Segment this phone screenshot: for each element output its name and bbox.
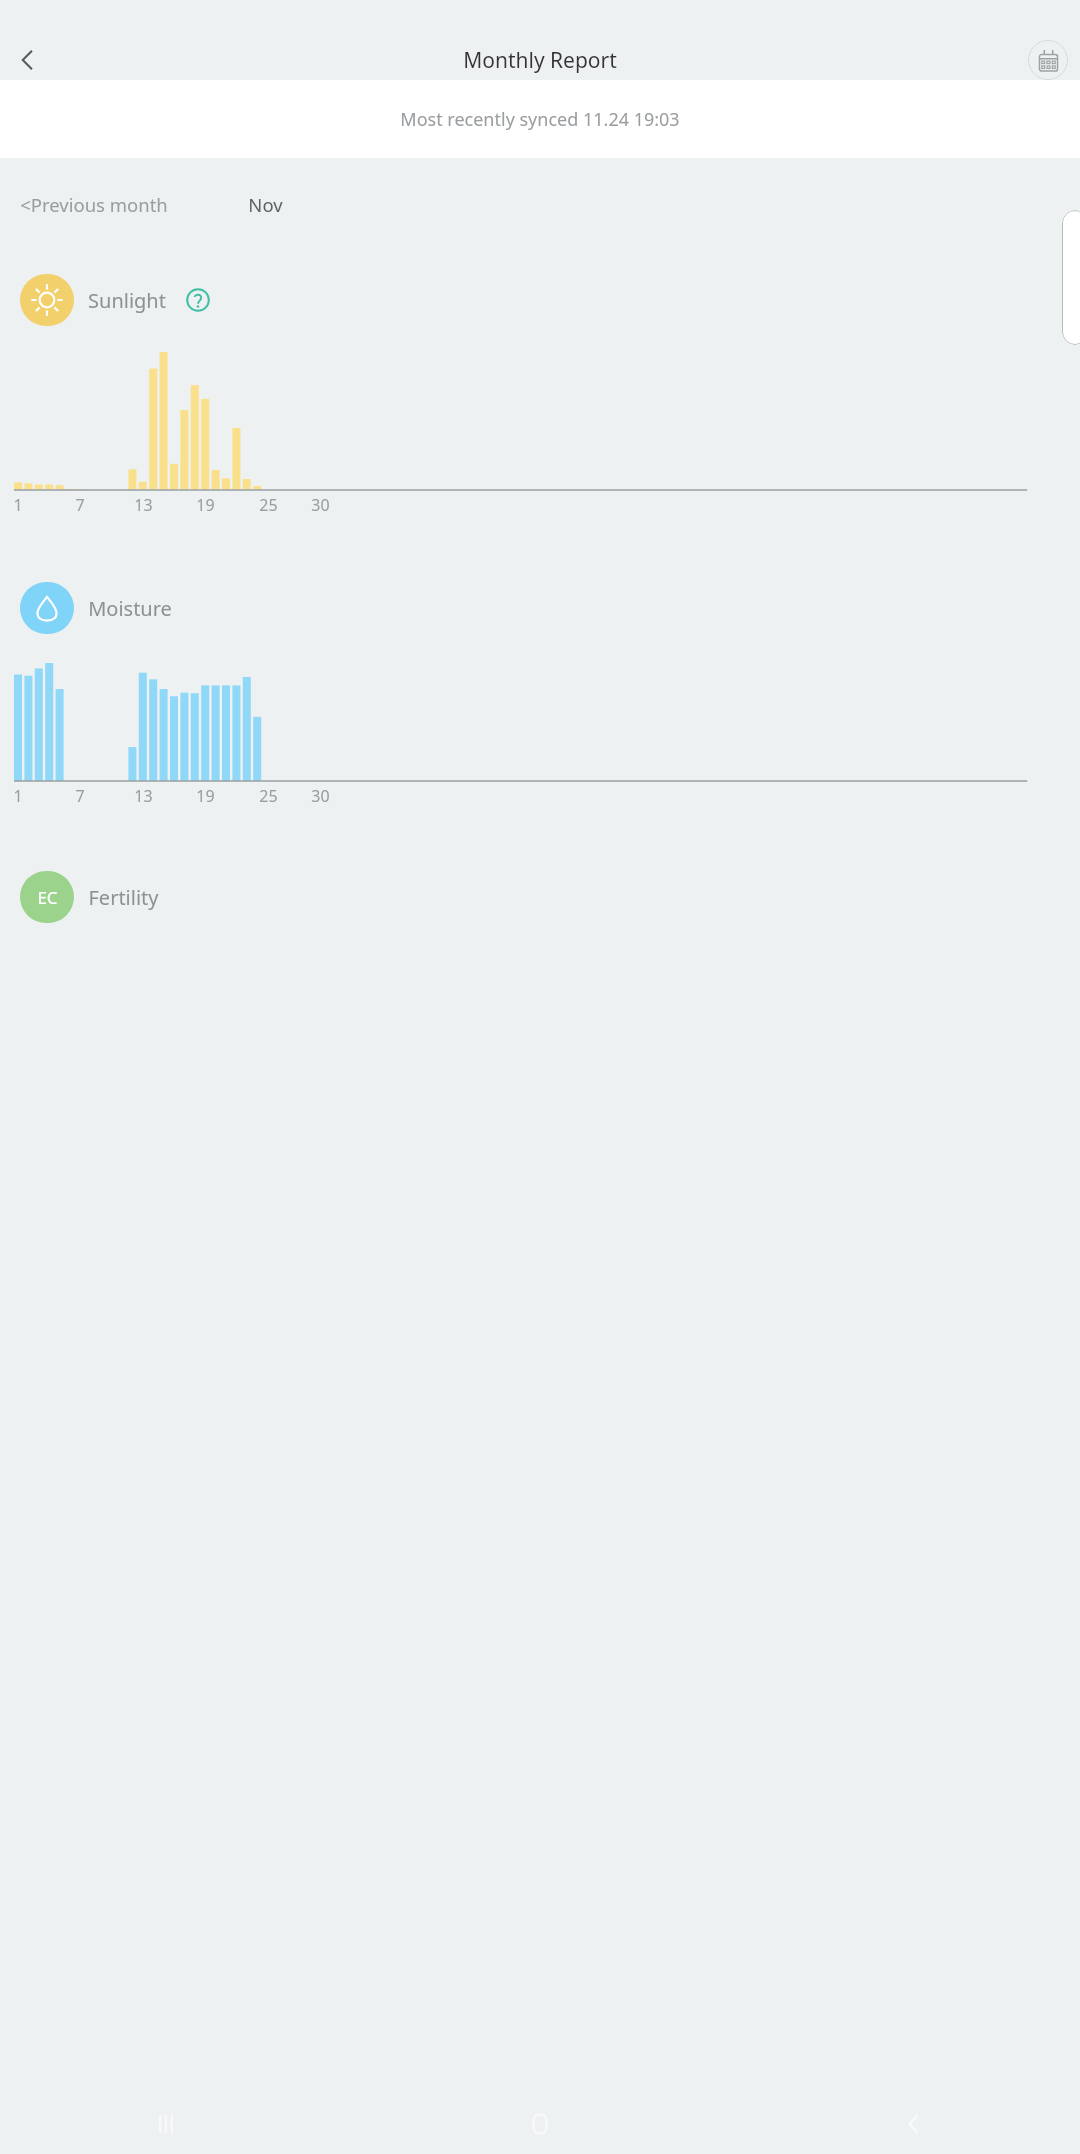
staticText: 7	[75, 785, 85, 807]
staticText: Sunlight	[88, 287, 166, 314]
staticText: EC	[37, 886, 58, 909]
staticText: Monthly Report	[463, 46, 617, 75]
staticText: <Previous month	[20, 192, 168, 217]
button[interactable]: Calendar	[1028, 40, 1068, 80]
button[interactable]: <Previous month	[20, 192, 168, 217]
staticText: 7	[75, 494, 85, 516]
staticText: 13	[134, 494, 153, 516]
staticText: 13	[134, 785, 153, 807]
staticText: Nov	[248, 192, 283, 217]
staticText: Most recently synced 11.24 19:03	[400, 107, 680, 132]
staticText: 19	[196, 494, 215, 516]
staticText: 1	[13, 494, 23, 516]
staticText: Fertility	[88, 884, 159, 911]
button[interactable]: Help	[182, 284, 214, 316]
staticText: Moisture	[88, 595, 172, 622]
button[interactable]: Nov	[248, 192, 283, 217]
staticText: 30	[311, 494, 330, 516]
staticText: 30	[311, 785, 330, 807]
staticText: 19	[196, 785, 215, 807]
staticText: 1	[13, 785, 23, 807]
staticText: 25	[259, 785, 278, 807]
button[interactable]: Back	[8, 40, 48, 80]
staticText: 25	[259, 494, 278, 516]
